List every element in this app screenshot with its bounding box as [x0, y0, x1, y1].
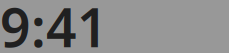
staticText: 9:41: [0, 0, 108, 53]
